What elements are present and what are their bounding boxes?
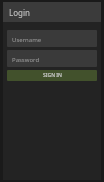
button[interactable]: Username (7, 30, 97, 47)
button[interactable]: Password (7, 50, 97, 67)
button[interactable]: Sign in (7, 70, 97, 81)
staticText: SIGN IN (43, 72, 62, 79)
staticText: Login (9, 7, 30, 18)
staticText: Username (12, 36, 42, 44)
staticText: Password (12, 56, 40, 64)
